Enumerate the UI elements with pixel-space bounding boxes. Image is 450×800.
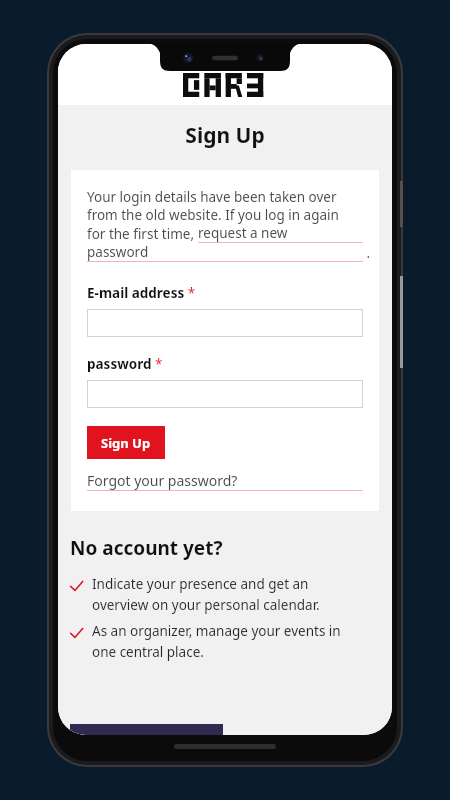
- staticText: request a new: [198, 224, 288, 242]
- staticText: E-mail address *: [87, 284, 196, 302]
- staticText: for the first time,: [87, 225, 198, 243]
- staticText: from the old website. If you log in agai…: [87, 206, 339, 224]
- staticText: password *: [87, 355, 163, 373]
- staticText: Sign Up: [101, 434, 151, 452]
- staticText: Sign Up: [58, 121, 392, 150]
- button[interactable]: request a new: [198, 224, 363, 243]
- button[interactable]: [87, 309, 363, 337]
- button[interactable]: Sign Up: [87, 426, 165, 459]
- staticText: Your login details have been taken over: [87, 188, 337, 206]
- staticText: Indicate your presence and get an overvi…: [92, 575, 320, 614]
- staticText: Forgot your password?: [87, 471, 238, 490]
- staticText: As an organizer, manage your events in o…: [92, 622, 341, 661]
- button[interactable]: [87, 380, 363, 408]
- staticText: No account yet?: [70, 535, 223, 561]
- button[interactable]: password: [87, 243, 363, 262]
- button[interactable]: Forgot your password?: [87, 471, 363, 491]
- staticText: password: [87, 243, 149, 261]
